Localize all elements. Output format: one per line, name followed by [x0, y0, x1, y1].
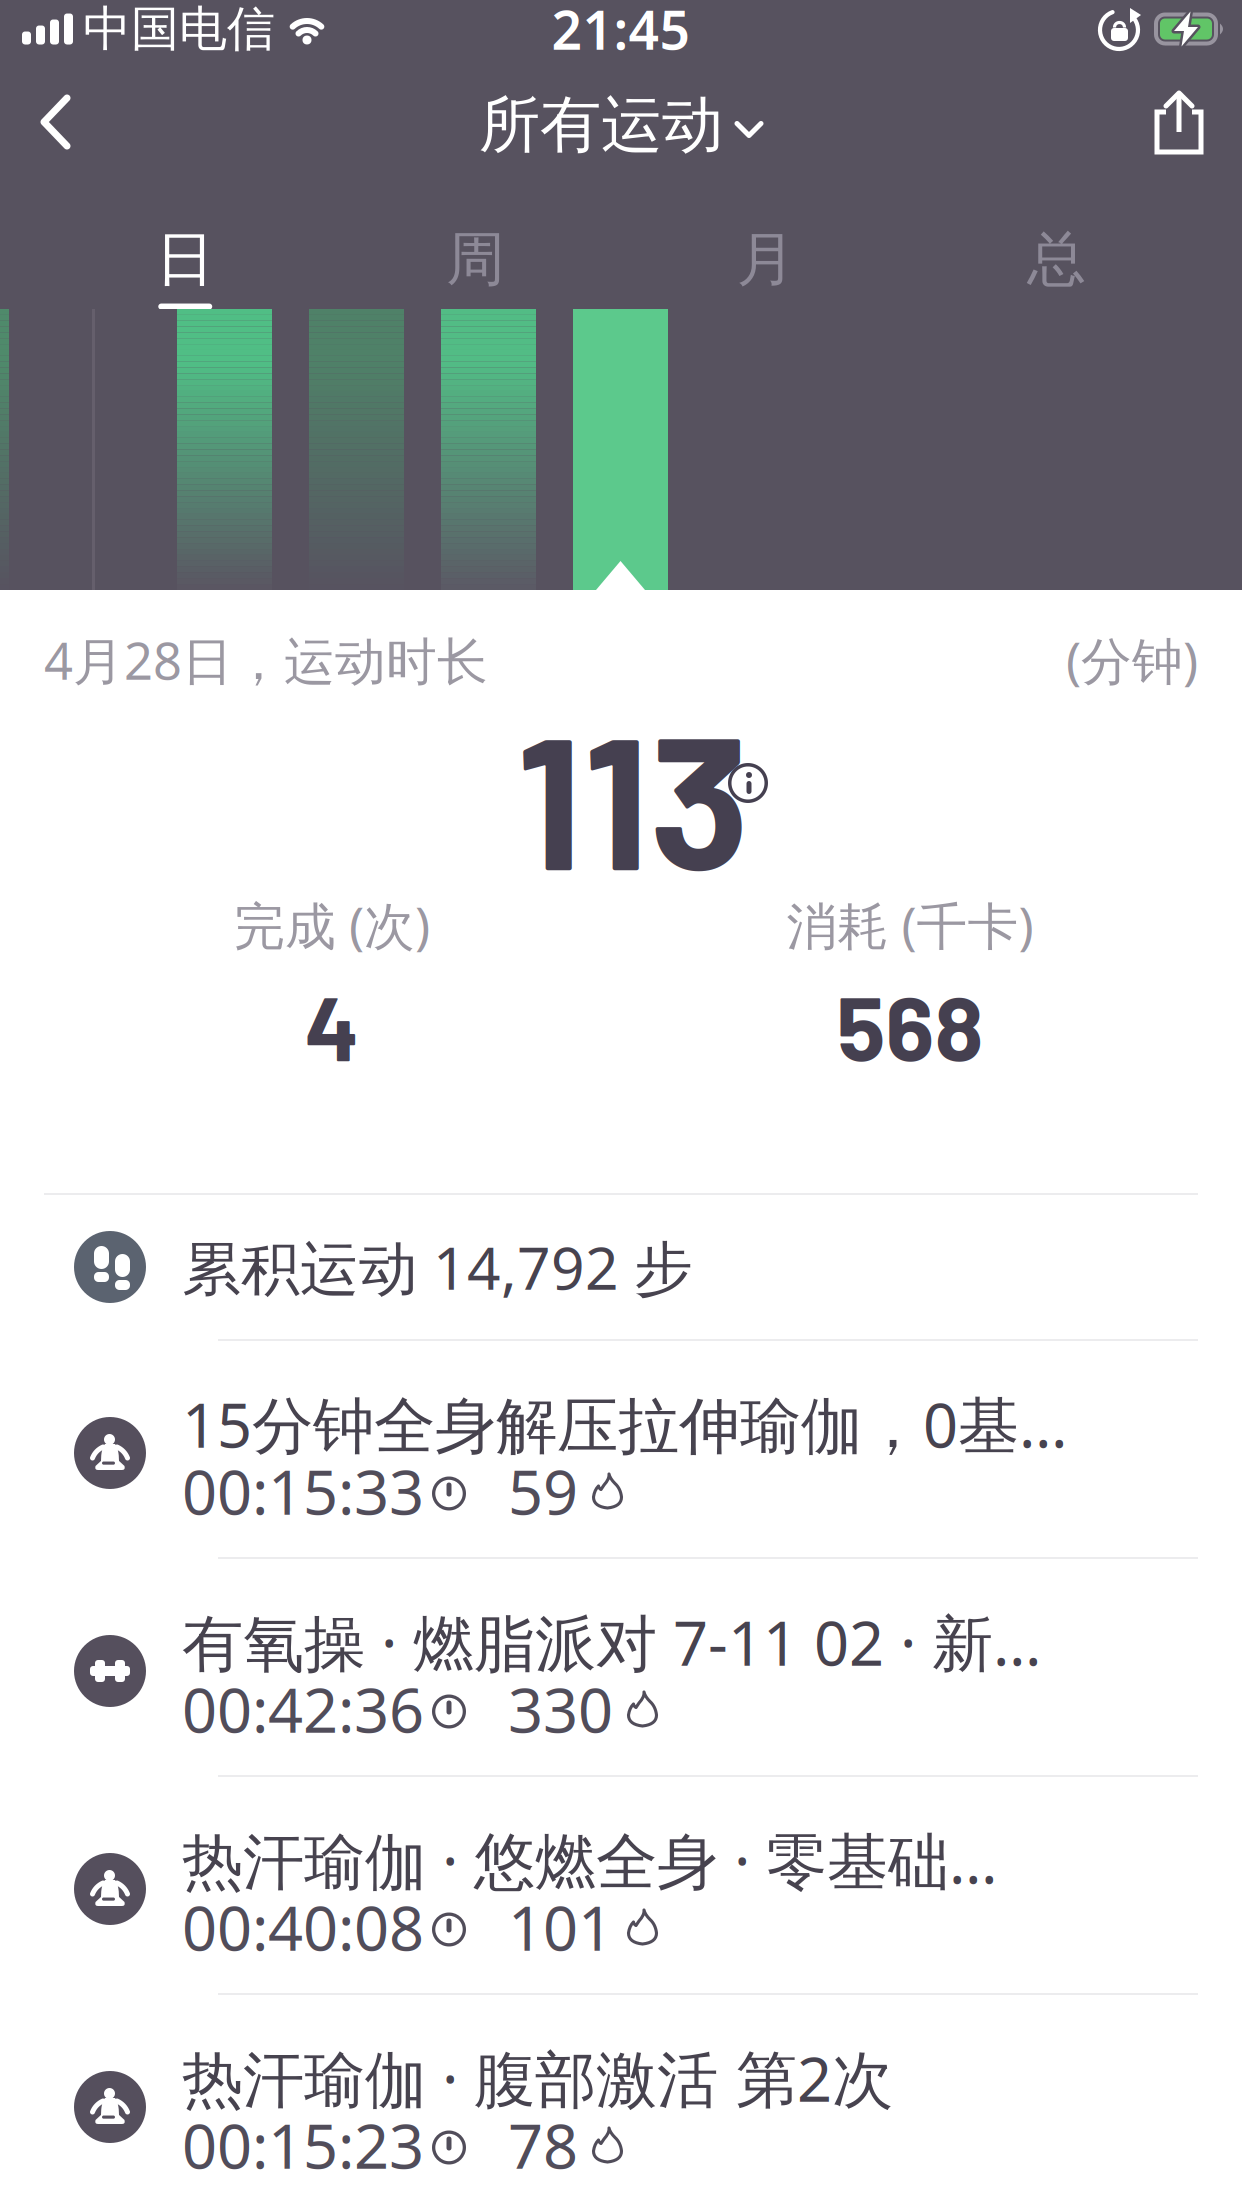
button[interactable]: About exercise minutes [728, 730, 768, 803]
staticText: 月 [737, 223, 796, 296]
staticText: 00:15:23 [182, 2104, 424, 2186]
staticText: 4 [304, 971, 359, 1079]
button[interactable]: 热汗瑜伽 · 悠燃全身 · 零基础… [0, 1777, 1242, 1993]
button[interactable]: 日 [40, 166, 330, 310]
button[interactable]: 15分钟全身解压拉伸瑜伽，0基… [0, 1341, 1242, 1557]
staticText: 4月28日，运动时长 [44, 626, 488, 694]
staticText: 00:15:33 [182, 1450, 424, 1532]
staticText: 568 [836, 971, 983, 1079]
staticText: 78 [508, 2104, 578, 2186]
button[interactable]: Share [1152, 70, 1242, 176]
button[interactable]: 月 [621, 166, 911, 310]
staticText: 59 [508, 1450, 578, 1532]
staticText: 330 [508, 1668, 613, 1750]
staticText: 有氧操 · 燃脂派对 7-11 02 · 新… [182, 1601, 1042, 1683]
button[interactable]: Back [0, 69, 72, 177]
staticText: 00:40:08 [182, 1886, 424, 1968]
staticText: 21:45 [551, 0, 690, 64]
staticText: 热汗瑜伽 · 悠燃全身 · 零基础… [182, 1819, 998, 1901]
button[interactable]: 总 [911, 166, 1202, 310]
staticText: 中国电信 [83, 0, 275, 58]
staticText: (分钟) [1066, 626, 1198, 694]
button[interactable]: 所有运动 [479, 87, 763, 163]
staticText: 周 [446, 223, 505, 296]
staticText: 15分钟全身解压拉伸瑜伽，0基… [182, 1383, 1068, 1465]
staticText: 00:42:36 [182, 1668, 424, 1750]
button[interactable]: 热汗瑜伽 · 腹部激活 第2次 [0, 1995, 1242, 2208]
staticText: 热汗瑜伽 · 腹部激活 第2次 [182, 2037, 893, 2119]
staticText: 113 [516, 685, 749, 907]
staticText: 累积运动 14,792 步 [182, 1228, 693, 1306]
staticText: 总 [1027, 223, 1086, 296]
staticText: 日 [156, 223, 215, 296]
button[interactable]: 有氧操 · 燃脂派对 7-11 02 · 新… [0, 1559, 1242, 1775]
staticText: 完成 (次) [234, 891, 430, 959]
staticText: 消耗 (千卡) [786, 891, 1033, 959]
button[interactable]: 周 [330, 166, 621, 310]
button[interactable]: 累积运动 14,792 步 [0, 1195, 1242, 1339]
staticText: 101 [508, 1886, 613, 1968]
staticText: 所有运动 [479, 87, 723, 163]
